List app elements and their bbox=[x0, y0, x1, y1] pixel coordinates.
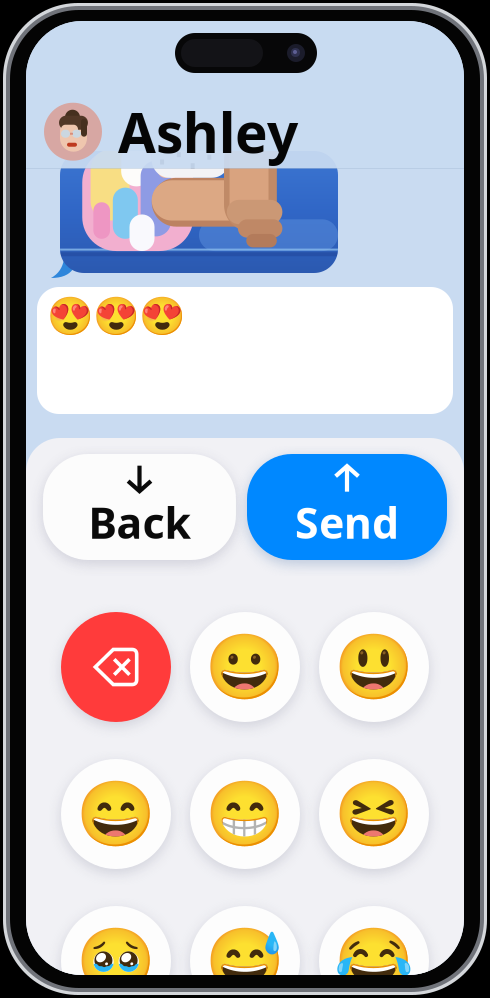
staticText: Send bbox=[295, 494, 399, 550]
staticText: 😁 bbox=[205, 777, 285, 850]
staticText: Ashley bbox=[118, 95, 298, 168]
button[interactable]: Back bbox=[43, 454, 236, 560]
staticText: 😂 bbox=[334, 924, 414, 997]
staticText: 😅 bbox=[205, 924, 285, 997]
button[interactable]: Face with tears of joy bbox=[319, 906, 429, 998]
button[interactable]: Delete bbox=[61, 612, 171, 722]
button[interactable]: Grinning face with sweat bbox=[190, 906, 300, 998]
staticText: 😃 bbox=[334, 630, 414, 703]
staticText: 😄 bbox=[76, 777, 156, 850]
button[interactable]: Grinning face with big eyes bbox=[319, 612, 429, 722]
button[interactable]: Face holding back tears bbox=[61, 906, 171, 998]
staticText: 🥹 bbox=[76, 924, 156, 997]
staticText: 😆 bbox=[334, 777, 414, 850]
button[interactable]: Grinning face bbox=[190, 612, 300, 722]
button[interactable]: Beaming face with smiling eyes bbox=[190, 759, 300, 869]
staticText: 😀 bbox=[205, 630, 285, 703]
button[interactable]: Ashley, profile bbox=[44, 103, 102, 161]
staticText: Back bbox=[88, 494, 190, 550]
staticText: 😍😍😍 bbox=[47, 295, 185, 338]
button[interactable]: Grinning squinting face bbox=[319, 759, 429, 869]
button[interactable]: Send bbox=[247, 454, 447, 560]
button[interactable]: Grinning face with smiling eyes bbox=[61, 759, 171, 869]
